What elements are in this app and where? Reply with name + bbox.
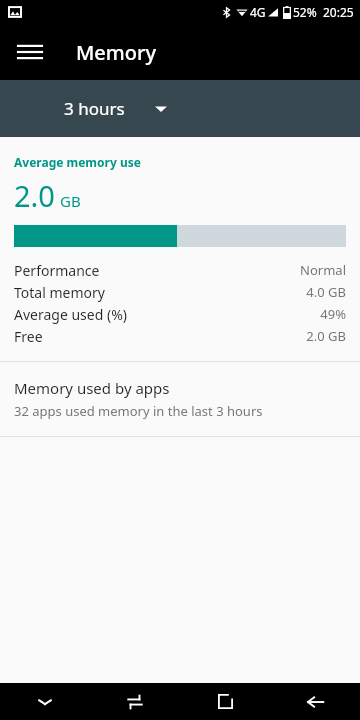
button[interactable]: Back — [270, 683, 360, 720]
button[interactable]: Memory used by apps — [0, 362, 360, 436]
staticText: 4G — [250, 4, 266, 20]
button[interactable]: Hide keyboard — [0, 683, 90, 720]
button[interactable]: Open navigation drawer — [6, 28, 54, 76]
staticText: Normal — [300, 261, 346, 279]
staticText: Memory — [76, 39, 157, 66]
staticText: 2.0 — [14, 176, 55, 215]
staticText: Memory used by apps — [14, 378, 170, 398]
staticText: Total memory — [14, 283, 105, 302]
staticText: Average used (%) — [14, 305, 127, 324]
staticText: 3 hours — [64, 97, 125, 120]
staticText: Performance — [14, 261, 100, 280]
button[interactable]: Switch input method — [90, 683, 180, 720]
staticText: 20:25 — [323, 4, 354, 20]
staticText: Free — [14, 327, 43, 346]
staticText: 4.0 GB — [306, 283, 346, 301]
staticText: 32 apps used memory in the last 3 hours — [14, 402, 263, 420]
button[interactable]: Recent apps — [180, 683, 270, 720]
staticText: 52% — [293, 4, 317, 20]
staticText: Average memory use — [14, 154, 141, 170]
staticText: GB — [60, 191, 81, 211]
staticText: 2.0 GB — [306, 327, 346, 345]
staticText: 49% — [320, 305, 346, 323]
button[interactable]: 3 hours — [64, 97, 167, 120]
